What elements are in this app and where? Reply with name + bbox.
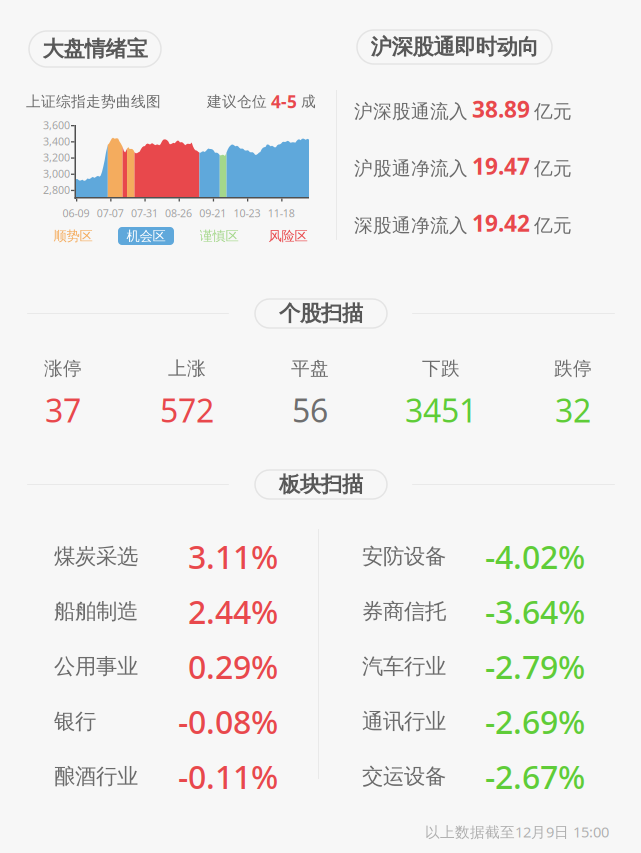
staticText: 19.47 bbox=[472, 151, 530, 181]
staticText: 3,400 bbox=[43, 134, 70, 148]
staticText: 4-5 bbox=[271, 90, 297, 113]
staticText: 08-26 bbox=[165, 206, 192, 220]
staticText: 安防设备 bbox=[362, 543, 446, 570]
staticText: 亿元 bbox=[534, 157, 572, 180]
staticText: 2,800 bbox=[43, 183, 70, 197]
staticText: -2.69% bbox=[485, 700, 585, 743]
staticText: 成 bbox=[301, 92, 316, 110]
staticText: 汽车行业 bbox=[362, 653, 446, 680]
staticText: -4.02% bbox=[485, 535, 585, 578]
staticText: 公用事业 bbox=[54, 653, 138, 680]
staticText: 3451 bbox=[405, 389, 477, 431]
staticText: 572 bbox=[160, 389, 214, 431]
staticText: 10-23 bbox=[233, 206, 260, 220]
staticText: 船舶制造 bbox=[54, 598, 138, 625]
staticText: 3,000 bbox=[43, 167, 70, 181]
staticText: 19.42 bbox=[472, 208, 530, 238]
staticText: 券商信托 bbox=[362, 598, 446, 625]
staticText: 银行 bbox=[54, 708, 96, 735]
staticText: 机会区 bbox=[126, 228, 165, 244]
staticText: 0.29% bbox=[188, 645, 278, 688]
staticText: 07-31 bbox=[131, 206, 158, 220]
staticText: 上证综指走势曲线图 bbox=[26, 92, 161, 110]
staticText: 11-18 bbox=[268, 206, 295, 220]
staticText: 37 bbox=[45, 389, 81, 431]
staticText: 个股扫描 bbox=[279, 300, 363, 327]
staticText: 大盘情绪宝 bbox=[42, 36, 147, 62]
staticText: -2.79% bbox=[485, 645, 585, 688]
staticText: 56 bbox=[292, 389, 328, 431]
staticText: 深股通净流入 bbox=[354, 214, 468, 237]
staticText: 09-21 bbox=[199, 206, 226, 220]
staticText: 顺势区 bbox=[53, 228, 92, 244]
staticText: 32 bbox=[555, 389, 591, 431]
staticText: 沪深股通流入 bbox=[354, 100, 468, 123]
staticText: -2.67% bbox=[485, 755, 585, 798]
staticText: 交运设备 bbox=[362, 763, 446, 790]
staticText: 38.89 bbox=[472, 94, 530, 124]
staticText: 2.44% bbox=[188, 590, 278, 633]
staticText: 3,600 bbox=[43, 118, 70, 132]
staticText: 跌停 bbox=[554, 357, 592, 380]
button[interactable]: 谨慎区 bbox=[191, 227, 247, 245]
staticText: 07-07 bbox=[97, 206, 124, 220]
staticText: 平盘 bbox=[291, 357, 329, 380]
staticText: 通讯行业 bbox=[362, 708, 446, 735]
staticText: 沪股通净流入 bbox=[354, 157, 468, 180]
staticText: -0.08% bbox=[178, 700, 278, 743]
button[interactable]: 顺势区 bbox=[45, 227, 101, 245]
staticText: 下跌 bbox=[422, 357, 460, 380]
staticText: 沪深股通即时动向 bbox=[370, 34, 538, 60]
staticText: 建议仓位 bbox=[207, 92, 267, 110]
staticText: 亿元 bbox=[534, 214, 572, 237]
staticText: 06-09 bbox=[62, 206, 89, 220]
staticText: -0.11% bbox=[178, 755, 278, 798]
staticText: 风险区 bbox=[268, 228, 307, 244]
staticText: 3,200 bbox=[43, 150, 70, 165]
staticText: -3.64% bbox=[485, 590, 585, 633]
staticText: 上涨 bbox=[168, 357, 206, 380]
staticText: 酿酒行业 bbox=[54, 763, 138, 790]
button[interactable]: 风险区 bbox=[260, 227, 316, 245]
staticText: 3.11% bbox=[188, 535, 278, 578]
staticText: 以上数据截至12月9日 15:00 bbox=[425, 822, 609, 841]
staticText: 亿元 bbox=[534, 100, 572, 123]
staticText: 板块扫描 bbox=[279, 471, 363, 498]
button[interactable]: 机会区 bbox=[118, 227, 174, 245]
staticText: 涨停 bbox=[44, 357, 82, 380]
staticText: 煤炭采选 bbox=[54, 543, 138, 570]
staticText: 谨慎区 bbox=[199, 228, 238, 244]
